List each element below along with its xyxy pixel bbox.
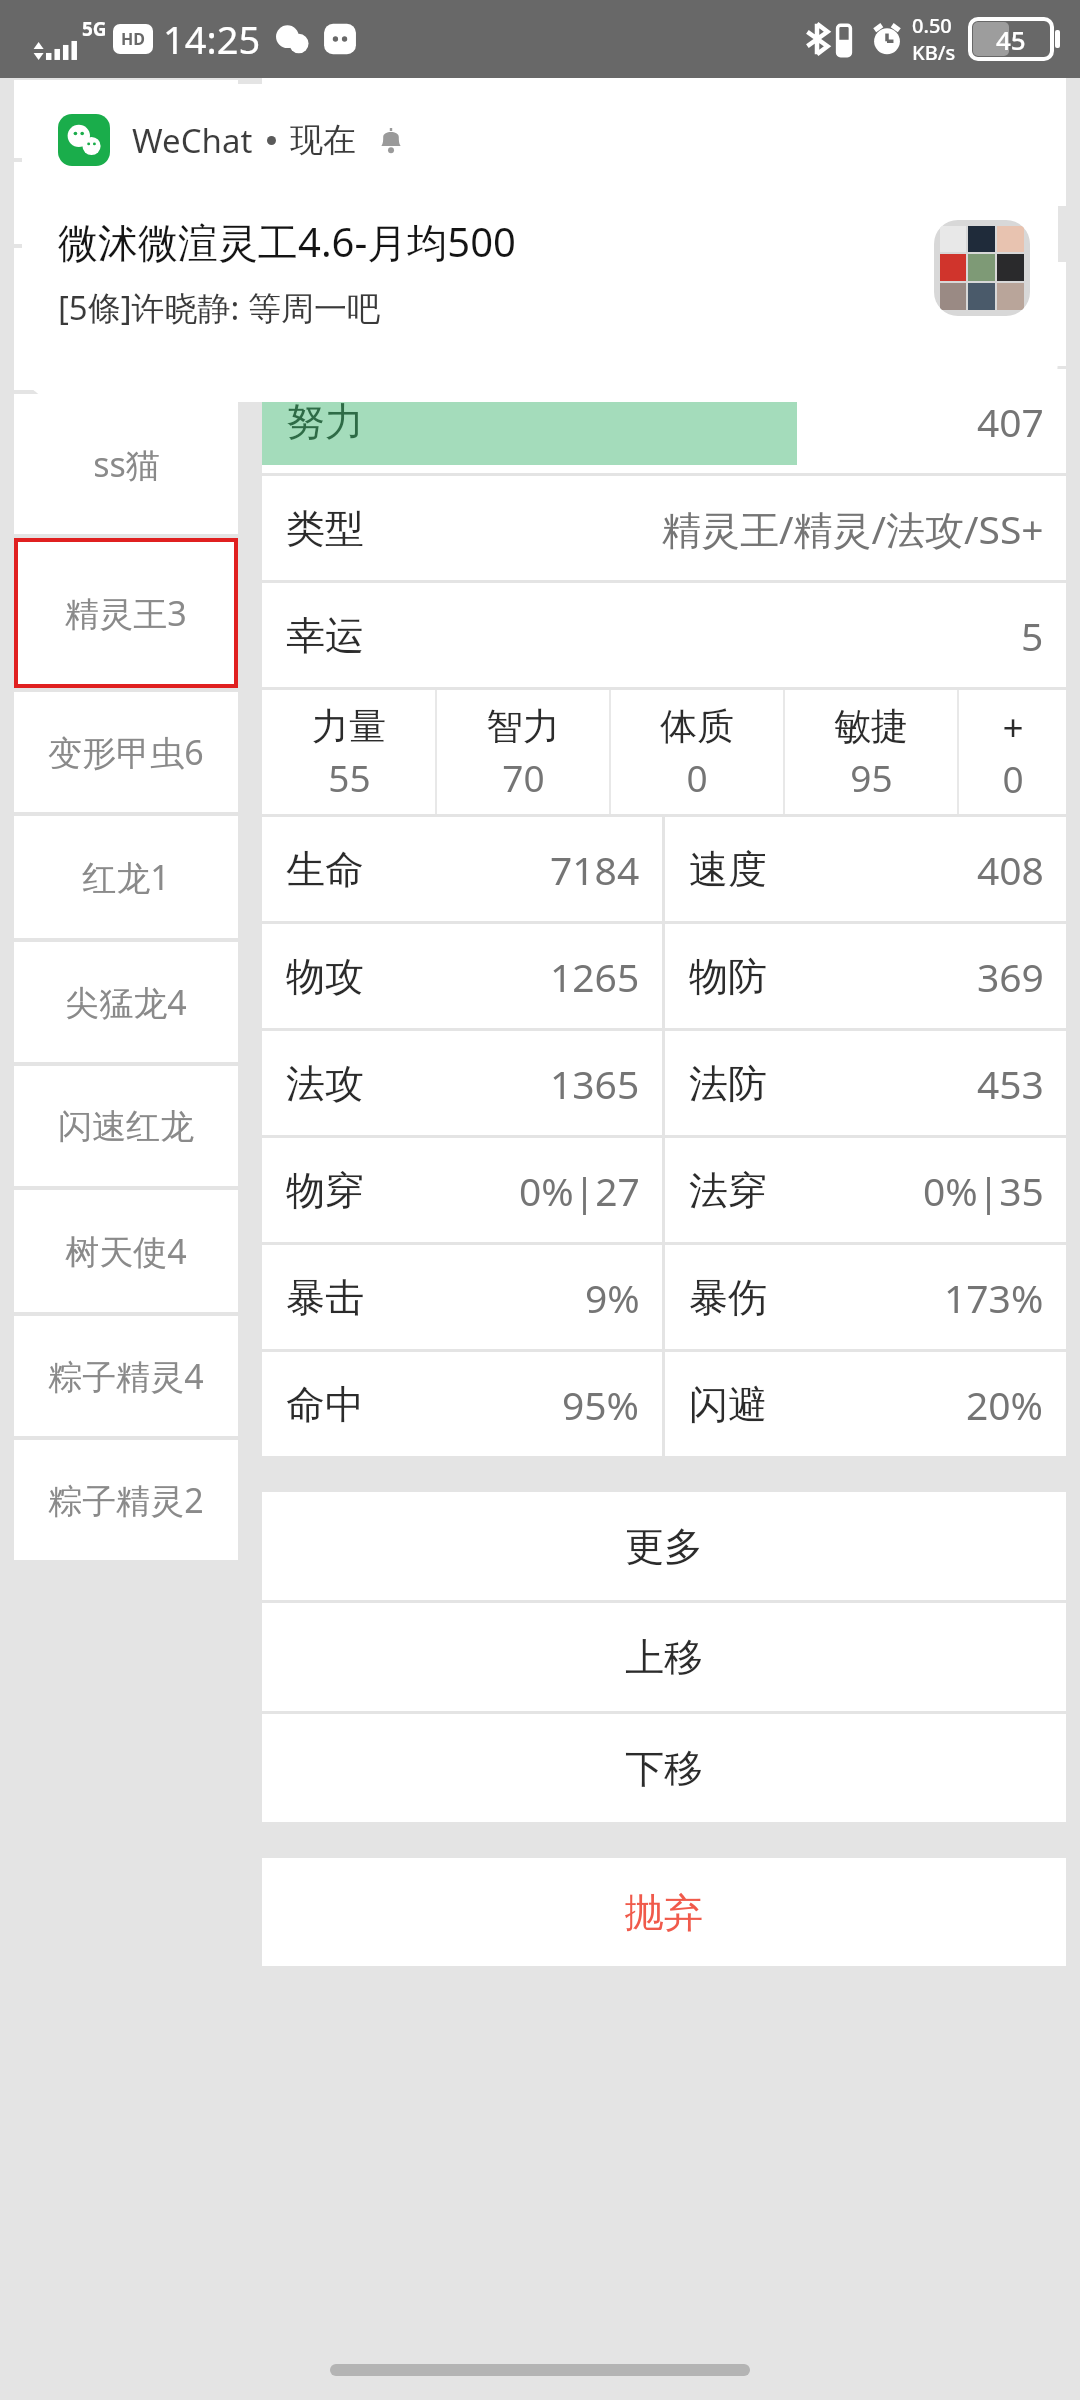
button[interactable]: 努力	[262, 369, 1066, 473]
staticText: 45	[996, 22, 1026, 57]
button[interactable]: 精灵王3	[14, 538, 238, 688]
staticText: 20%	[966, 1378, 1044, 1431]
button[interactable]: 闪速红龙	[14, 1066, 238, 1186]
button[interactable]: 体质	[611, 690, 783, 814]
staticText: 幸运	[286, 611, 364, 660]
button[interactable]: Lv	[262, 262, 1066, 366]
staticText: 物攻	[286, 952, 364, 1001]
button[interactable]: 属性	[262, 78, 463, 206]
button[interactable]: 小菜狗56	[14, 248, 238, 390]
staticText: 类型	[286, 504, 364, 553]
staticText: +	[1002, 701, 1024, 751]
staticText: 尖猛龙4	[65, 979, 187, 1025]
button[interactable]: 闪避	[665, 1352, 1066, 1456]
staticText: 精灵王3Lv44	[821, 210, 1046, 260]
button[interactable]: ss猫	[14, 394, 238, 534]
staticText: 粽子精灵2	[48, 1477, 204, 1523]
button[interactable]: 速度	[665, 817, 1066, 921]
staticText: 下移	[625, 1744, 703, 1793]
button[interactable]: 力量	[262, 690, 435, 814]
staticText: 法攻	[286, 1059, 364, 1108]
staticText: 敏捷	[834, 703, 908, 750]
staticText: 法穿	[689, 1166, 767, 1215]
button[interactable]: 粽子精灵2	[14, 1440, 238, 1560]
staticText: 智力	[486, 703, 560, 750]
staticText: 命中	[286, 1380, 364, 1429]
button[interactable]: 暴击	[262, 1245, 662, 1349]
staticText: 现在	[290, 119, 356, 161]
staticText: 物防	[689, 952, 767, 1001]
staticText: 微沭微渲灵工4.6-月均500	[58, 214, 516, 269]
button[interactable]: 法攻	[262, 1031, 662, 1135]
button[interactable]: 尖猛龙4	[14, 942, 238, 1062]
button[interactable]: 命中	[262, 1352, 662, 1456]
button[interactable]: 法穿	[665, 1138, 1066, 1242]
button[interactable]: 物防	[665, 924, 1066, 1028]
button[interactable]: 幸运	[262, 583, 1066, 687]
button[interactable]: 暴伤	[665, 1245, 1066, 1349]
staticText: 上移	[625, 1633, 703, 1682]
staticText: 0.50	[912, 12, 952, 39]
button[interactable]: 敏捷	[785, 690, 957, 814]
staticText: 369	[977, 950, 1044, 1003]
staticText: 95	[850, 752, 893, 802]
button[interactable]: 红龙1	[14, 816, 238, 938]
staticText: ss猫	[93, 441, 160, 487]
button[interactable]: 物攻	[262, 924, 662, 1028]
staticText: 453	[977, 1057, 1044, 1110]
button[interactable]: 粽子精灵4	[14, 1316, 238, 1436]
staticText: WeChat	[132, 118, 253, 163]
staticText: 闪避	[689, 1380, 767, 1429]
staticText: 努力	[286, 397, 364, 446]
button[interactable]: 树天使4	[14, 1190, 238, 1312]
staticText: 速度	[689, 845, 767, 894]
button[interactable]: 生命	[262, 817, 662, 921]
staticText: 0	[1002, 753, 1024, 803]
button[interactable]: 变形甲虫6	[14, 692, 238, 812]
button[interactable]: 上移	[262, 1603, 1066, 1711]
button[interactable]: 类型	[262, 476, 1066, 580]
staticText: 树天使4	[65, 1228, 187, 1274]
staticText: 闪速红龙	[58, 1105, 194, 1148]
button[interactable]: 抛弃	[262, 1858, 1066, 1966]
staticText: 抛弃	[625, 1888, 703, 1937]
staticText: 法防	[689, 1059, 767, 1108]
staticText: 粽子精灵4	[48, 1353, 204, 1399]
staticText: 7184	[550, 843, 640, 896]
staticText: 筛选	[92, 98, 160, 141]
staticText: 407	[977, 395, 1044, 448]
button[interactable]: 一键抛弃	[14, 162, 238, 244]
staticText: [5條]许晓静: 等周一吧	[58, 285, 381, 330]
button[interactable]: 下移	[262, 1714, 1066, 1822]
staticText: 173%	[944, 1271, 1044, 1324]
staticText: KB/s	[912, 39, 956, 66]
staticText: 408	[977, 843, 1044, 896]
staticText: 0%|35	[923, 1164, 1044, 1217]
staticText: 力量	[312, 703, 386, 750]
button[interactable]: 更多	[262, 1492, 1066, 1600]
button[interactable]: +	[959, 690, 1066, 814]
staticText: 精灵王/精灵/法攻/SS+	[662, 502, 1044, 555]
staticText: 体质	[660, 703, 734, 750]
staticText: 5	[1021, 609, 1044, 662]
staticText: 14:25	[163, 13, 261, 65]
button[interactable]: 法防	[665, 1031, 1066, 1135]
button[interactable]: 物穿	[262, 1138, 662, 1242]
button[interactable]: WeChat	[22, 84, 1058, 402]
button[interactable]: 筛选	[14, 80, 238, 158]
staticText: 物穿	[286, 1166, 364, 1215]
staticText: 更多	[625, 1522, 703, 1571]
staticText: 70	[502, 752, 545, 802]
staticText: 44	[999, 288, 1044, 341]
button[interactable]: 智力	[437, 690, 609, 814]
staticText: 暴伤	[689, 1273, 767, 1322]
staticText: 5G	[82, 16, 107, 42]
staticText: HD	[121, 28, 145, 50]
staticText: 属性	[324, 118, 402, 167]
